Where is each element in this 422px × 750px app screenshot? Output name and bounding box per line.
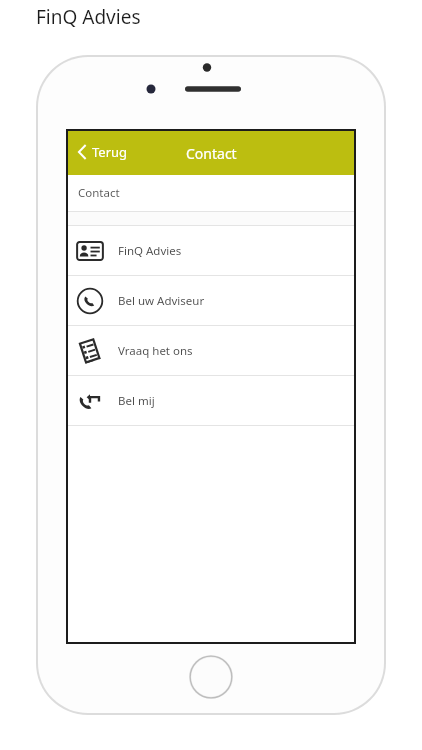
staticText: FinQ Advies — [36, 4, 141, 30]
staticText: Contact — [186, 144, 237, 163]
staticText: Bel mij — [118, 393, 155, 409]
button[interactable]: FinQ Advies — [66, 226, 356, 275]
other: Home — [189, 655, 233, 699]
staticText: Terug — [92, 143, 128, 161]
button[interactable]: Bel uw Adviseur — [66, 276, 356, 325]
staticText: Contact — [78, 185, 120, 201]
button[interactable]: Vraaq het ons — [66, 326, 356, 375]
staticText: Bel uw Adviseur — [118, 293, 205, 309]
button[interactable]: Bel mij — [66, 376, 356, 425]
button[interactable]: Terug — [74, 139, 132, 165]
staticText: Vraaq het ons — [118, 343, 193, 359]
staticText: FinQ Advies — [118, 243, 182, 259]
